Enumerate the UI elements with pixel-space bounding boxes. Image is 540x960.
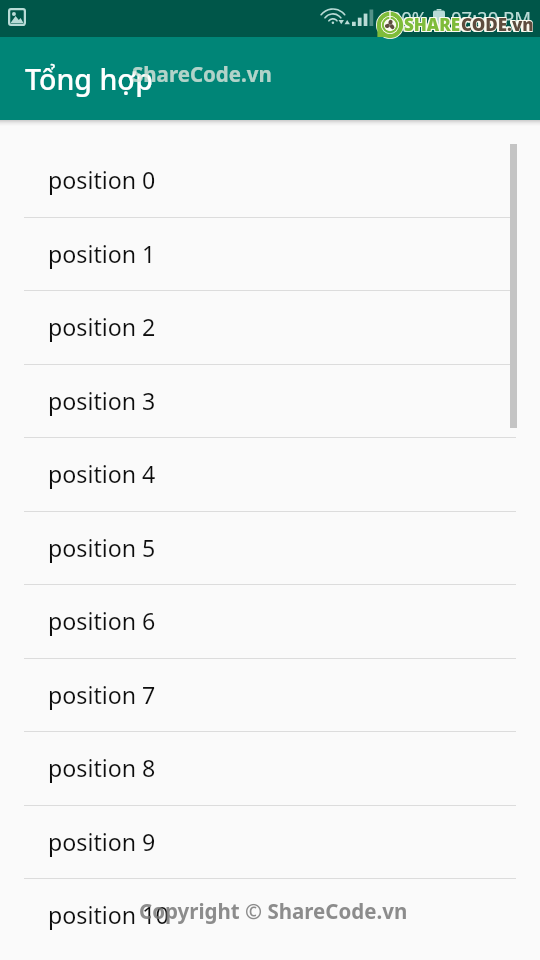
button[interactable]: position 10 xyxy=(0,879,540,953)
staticText: SHARE xyxy=(404,13,461,36)
staticText: position 6 xyxy=(48,605,156,637)
staticText: SHARECODE.vn xyxy=(405,12,534,35)
staticText: position 7 xyxy=(48,679,156,711)
staticText: position 2 xyxy=(48,311,156,343)
staticText: ShareCode.vn xyxy=(132,60,272,88)
button[interactable]: position 7 xyxy=(0,659,540,732)
button[interactable]: position 4 xyxy=(0,438,540,512)
button[interactable]: position 0 xyxy=(0,144,540,218)
staticText: SHARECODE.vn xyxy=(404,14,533,37)
button[interactable]: position 2 xyxy=(0,291,540,365)
button[interactable]: position 1 xyxy=(0,218,540,291)
staticText: position 10 xyxy=(48,899,169,931)
staticText: SHARECODE.vn xyxy=(403,12,532,35)
button[interactable]: position 3 xyxy=(0,365,540,438)
staticText: SHARECODE.vn xyxy=(403,13,532,36)
staticText: SHARECODE.vn xyxy=(403,14,532,37)
staticText: SHARECODE.vn xyxy=(405,13,534,36)
other: Screenshot saved xyxy=(8,8,26,26)
button[interactable]: position 8 xyxy=(0,732,540,806)
staticText: position 3 xyxy=(48,385,156,417)
staticText: position 4 xyxy=(48,458,156,490)
staticText: Copyright © ShareCode.vn xyxy=(139,897,408,925)
staticText: position 1 xyxy=(48,238,156,270)
button[interactable]: position 6 xyxy=(0,585,540,659)
staticText: position 8 xyxy=(48,752,156,784)
staticText: 07:20 PM xyxy=(451,5,532,30)
staticText: Tổng hợp xyxy=(25,60,154,99)
staticText: CODE.vn xyxy=(461,13,534,36)
button[interactable]: position 5 xyxy=(0,512,540,585)
staticText: position 5 xyxy=(48,532,156,564)
staticText: SHARECODE.vn xyxy=(405,14,534,37)
staticText: SHARECODE.vn xyxy=(404,12,533,35)
staticText: position 0 xyxy=(48,164,156,196)
staticText: position 9 xyxy=(48,826,156,858)
button[interactable]: position 9 xyxy=(0,806,540,879)
staticText: 100% xyxy=(380,5,428,30)
